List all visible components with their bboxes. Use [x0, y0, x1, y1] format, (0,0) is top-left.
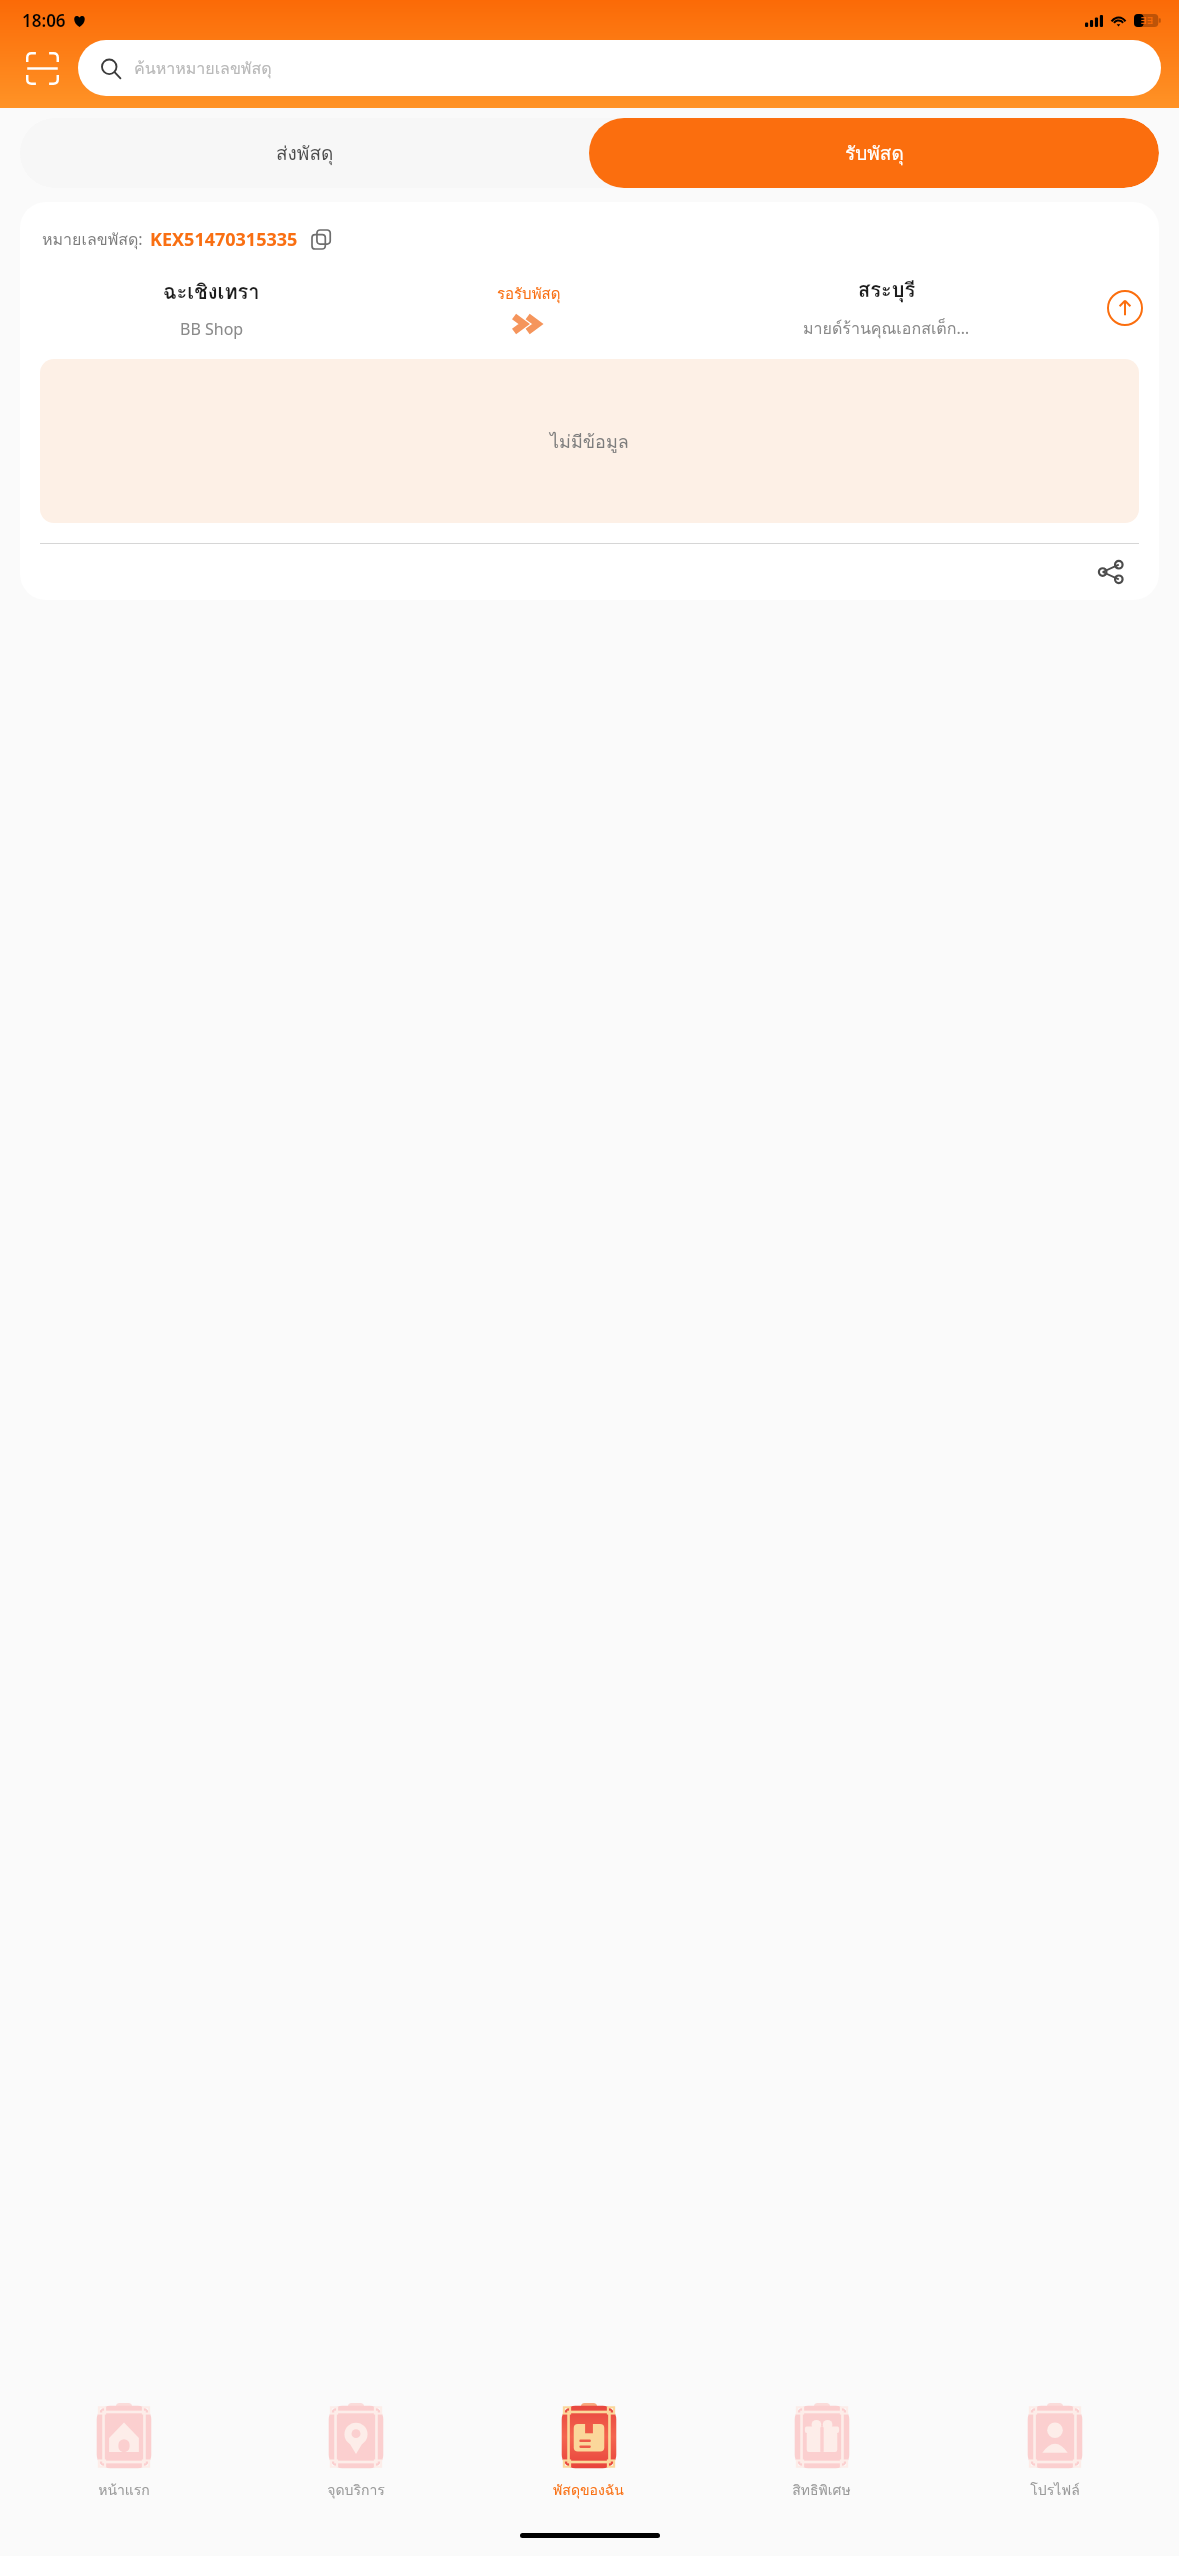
button[interactable]: Scan barcode: [20, 46, 64, 90]
button[interactable]: สิทธิพิเศษ: [705, 2397, 938, 2507]
staticText: มายด์ร้านคุณเอกสเต็ก…: [803, 316, 970, 341]
button[interactable]: Expand details: [1103, 286, 1147, 330]
staticText: ส่งพัสดุ: [276, 138, 334, 168]
button[interactable]: Share: [1083, 544, 1139, 600]
button[interactable]: โปรไฟล์: [938, 2397, 1171, 2507]
staticText: โปรไฟล์: [1030, 2479, 1080, 2501]
staticText: 18:06: [22, 9, 66, 32]
staticText: ค้นหาหมายเลขพัสดุ: [134, 56, 272, 81]
staticText: สระบุรี: [858, 274, 916, 306]
staticText: ไม่มีข้อมูล: [550, 427, 629, 456]
staticText: พัสดุของฉัน: [553, 2479, 624, 2501]
button[interactable]: พัสดุของฉัน: [472, 2397, 705, 2507]
button[interactable]: จุดบริการ: [240, 2397, 472, 2507]
staticText: รอรับพัสดุ: [497, 282, 561, 306]
staticText: ฉะเชิงเทรา: [163, 276, 260, 308]
button[interactable]: หน้าแรก: [8, 2397, 240, 2507]
staticText: รับพัสดุ: [845, 138, 904, 168]
staticText: หมายเลขพัสดุ:: [42, 227, 143, 252]
staticText: หน้าแรก: [98, 2479, 150, 2501]
button[interactable]: ส่งพัสดุ: [20, 118, 589, 188]
staticText: KEX51470315335: [150, 227, 298, 252]
button[interactable]: รับพัสดุ: [589, 118, 1159, 188]
staticText: BB Shop: [180, 318, 244, 340]
button[interactable]: Copy tracking number: [306, 224, 336, 254]
staticText: สิทธิพิเศษ: [792, 2479, 851, 2501]
button[interactable]: ค้นหาหมายเลขพัสดุ: [78, 40, 1161, 96]
button[interactable]: หมายเลขพัสดุ:: [20, 202, 1159, 600]
staticText: จุดบริการ: [327, 2479, 385, 2501]
